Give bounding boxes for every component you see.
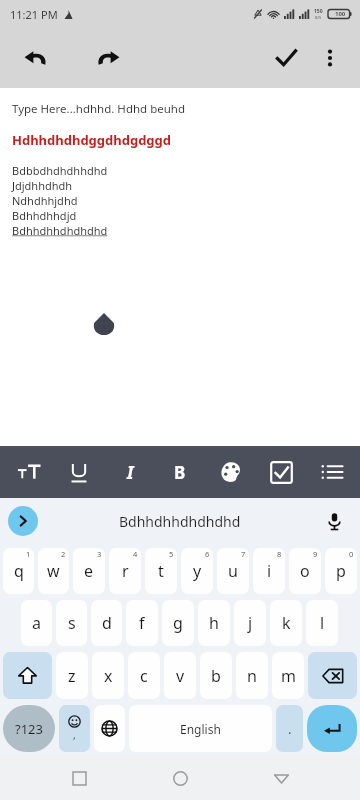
- button[interactable]: g: [162, 600, 194, 646]
- staticText: j: [248, 612, 253, 634]
- staticText: Hdhhdhdhdggdhdgdggd: [12, 131, 172, 149]
- staticText: w: [47, 560, 60, 582]
- staticText: a: [32, 612, 41, 634]
- button[interactable]: Shift: [3, 652, 52, 699]
- button[interactable]: i: [253, 548, 285, 594]
- button[interactable]: x: [92, 652, 124, 699]
- staticText: l: [320, 612, 325, 634]
- staticText: q: [14, 560, 24, 582]
- button[interactable]: w: [38, 548, 69, 594]
- staticText: 9: [313, 549, 318, 559]
- staticText: z: [68, 665, 76, 687]
- button[interactable]: j: [234, 600, 266, 646]
- staticText: 4: [133, 549, 138, 559]
- button[interactable]: Italic: [108, 450, 152, 494]
- staticText: e: [84, 560, 94, 582]
- staticText: i: [267, 560, 272, 582]
- button[interactable]: o: [289, 548, 321, 594]
- button[interactable]: Enter: [307, 705, 357, 752]
- button[interactable]: u: [217, 548, 249, 594]
- button[interactable]: Bdhhdhhdhdhdhd: [119, 512, 241, 531]
- button[interactable]: v: [164, 652, 196, 699]
- button[interactable]: Save: [264, 36, 308, 80]
- staticText: B/S: [315, 15, 322, 20]
- staticText: 8: [277, 549, 282, 559]
- staticText: Bdhhdhhdjd: [12, 208, 77, 223]
- button[interactable]: Backspace: [308, 652, 357, 699]
- button[interactable]: n: [236, 652, 268, 699]
- staticText: 11:21 PM: [10, 7, 58, 22]
- button[interactable]: Text size: [7, 450, 51, 494]
- button[interactable]: h: [198, 600, 230, 646]
- staticText: Bdhhdhhdhdhdhd: [119, 512, 241, 531]
- staticText: English: [180, 721, 221, 737]
- staticText: Type Here...hdhhd. Hdhd beuhd: [12, 101, 185, 117]
- staticText: p: [336, 560, 346, 582]
- staticText: 7: [241, 549, 246, 559]
- button[interactable]: Emoji: [59, 705, 90, 752]
- staticText: v: [176, 665, 185, 687]
- button[interactable]: Period: [276, 705, 303, 752]
- button[interactable]: e: [73, 548, 105, 594]
- staticText: g: [173, 612, 183, 634]
- staticText: Jdjdhhdhdh: [12, 178, 73, 193]
- button[interactable]: More suggestions: [8, 506, 38, 536]
- button[interactable]: Color palette: [209, 450, 253, 494]
- button[interactable]: ?123: [3, 705, 55, 752]
- staticText: m: [281, 665, 296, 687]
- button[interactable]: d: [91, 600, 122, 646]
- button[interactable]: a: [21, 600, 52, 646]
- staticText: Ndhdhhjdhd: [12, 193, 78, 208]
- button[interactable]: Bold: [158, 450, 202, 494]
- staticText: f: [139, 612, 145, 634]
- button[interactable]: Undo: [14, 36, 58, 80]
- button[interactable]: English: [129, 705, 272, 752]
- staticText: o: [300, 560, 310, 582]
- staticText: d: [102, 612, 112, 634]
- button[interactable]: Change language: [94, 705, 125, 752]
- staticText: 0: [349, 549, 354, 559]
- staticText: b: [211, 665, 221, 687]
- button[interactable]: p: [325, 548, 357, 594]
- staticText: Bdbbdhdhdhhdhd: [12, 163, 108, 178]
- button[interactable]: q: [3, 548, 34, 594]
- staticText: 3: [97, 549, 102, 559]
- button[interactable]: Underline: [57, 450, 101, 494]
- button[interactable]: Voice input: [318, 505, 350, 537]
- staticText: 100: [335, 10, 346, 18]
- button[interactable]: Home: [158, 756, 202, 800]
- button[interactable]: More options: [308, 36, 352, 80]
- staticText: r: [122, 560, 129, 582]
- staticText: s: [68, 612, 76, 634]
- button[interactable]: k: [270, 600, 302, 646]
- staticText: B: [174, 461, 186, 484]
- button[interactable]: Bullet list: [310, 450, 354, 494]
- staticText: ?123: [15, 720, 43, 738]
- staticText: I: [127, 461, 134, 484]
- button[interactable]: Back: [259, 756, 303, 800]
- button[interactable]: l: [306, 600, 338, 646]
- staticText: 6: [205, 549, 210, 559]
- button[interactable]: c: [128, 652, 160, 699]
- button[interactable]: f: [126, 600, 158, 646]
- staticText: c: [140, 665, 148, 687]
- staticText: 1: [26, 549, 31, 559]
- button[interactable]: b: [200, 652, 232, 699]
- staticText: u: [228, 560, 238, 582]
- button[interactable]: y: [181, 548, 213, 594]
- staticText: k: [282, 612, 291, 634]
- staticText: Bdhhdhhdhdhdhd: [12, 223, 108, 238]
- staticText: 150: [314, 8, 323, 15]
- staticText: ,: [73, 728, 76, 742]
- button[interactable]: z: [56, 652, 88, 699]
- button[interactable]: t: [145, 548, 177, 594]
- button[interactable]: m: [272, 652, 304, 699]
- button[interactable]: r: [109, 548, 141, 594]
- button[interactable]: Checkbox: [259, 450, 303, 494]
- staticText: 5: [169, 549, 174, 559]
- button[interactable]: Redo: [86, 36, 130, 80]
- staticText: .: [288, 720, 292, 738]
- button[interactable]: Recent apps: [57, 756, 101, 800]
- button[interactable]: s: [56, 600, 87, 646]
- staticText: x: [104, 665, 113, 687]
